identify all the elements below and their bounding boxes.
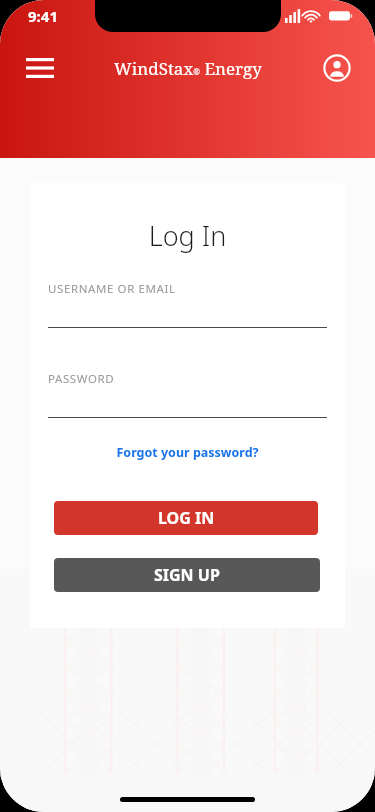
staticText: LOG IN [158, 507, 215, 529]
staticText: WindStax® Energy [114, 57, 262, 80]
staticText: USERNAME OR EMAIL [48, 281, 176, 297]
staticText: 9:41 [28, 6, 58, 26]
staticText: SIGN UP [154, 564, 220, 586]
button[interactable]: PASSWORD [48, 371, 327, 418]
staticText: Log In [30, 217, 345, 254]
button[interactable]: SIGN UP [54, 558, 320, 592]
staticText: PASSWORD [48, 371, 115, 387]
button[interactable]: Open navigation menu [18, 46, 62, 90]
button[interactable]: Account [317, 48, 357, 88]
button[interactable]: Forgot your password? [90, 440, 285, 464]
button[interactable]: LOG IN [54, 501, 318, 535]
staticText: Forgot your password? [116, 444, 259, 461]
button[interactable]: USERNAME OR EMAIL [48, 281, 327, 328]
